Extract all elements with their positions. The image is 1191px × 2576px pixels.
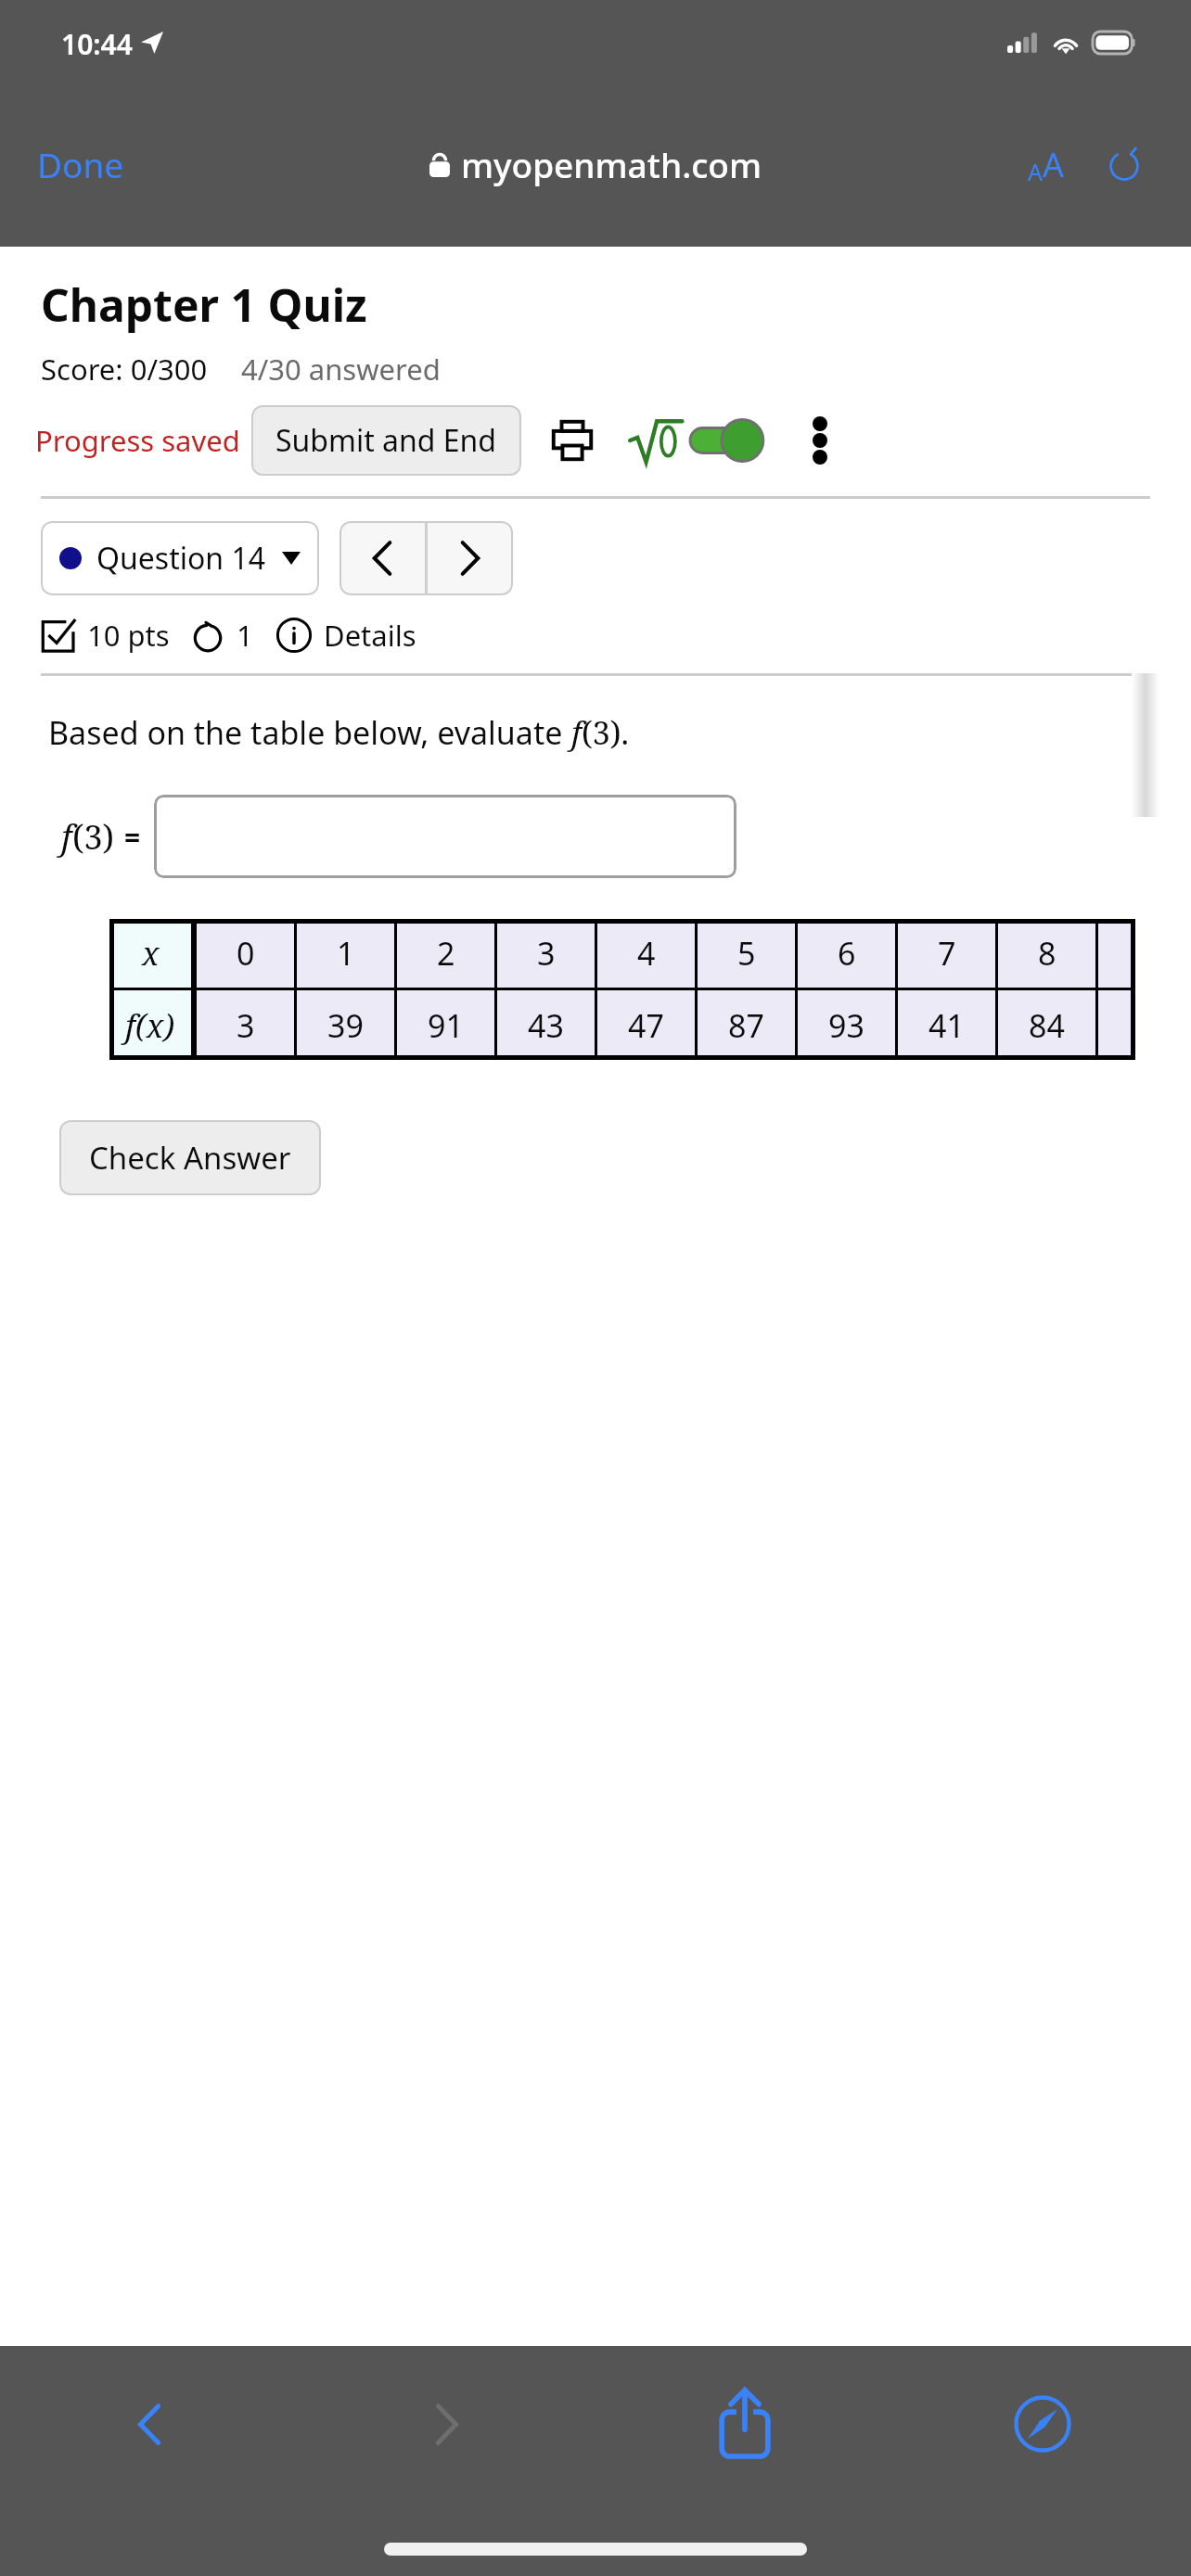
staticText: 7 [938,932,956,975]
staticText: 4/30 answered [241,350,441,389]
staticText: f [61,814,72,860]
staticText: (3) [72,814,115,860]
button[interactable]: Open in Safari [893,2378,1191,2470]
staticText: f [571,711,582,754]
staticText: Progress saved [35,421,240,460]
button[interactable]: Reload [1098,139,1150,191]
staticText: 1 [237,616,253,655]
staticText: 8 [1038,932,1057,975]
button[interactable]: Math editor toggle [690,418,764,463]
button[interactable]: Submit and End [251,405,521,476]
staticText: 0 [237,932,255,975]
staticText: 6 [838,932,856,975]
staticText: (x) [135,1004,175,1047]
staticText: Details [324,616,416,655]
button[interactable]: Text size [1018,133,1074,197]
staticText: 87 [728,1004,764,1047]
staticText: Score: 0/300 [41,350,208,389]
staticText: 3 [237,1004,255,1047]
staticText: 91 [428,1004,464,1047]
staticText: myopenmath.com [461,141,762,187]
button[interactable]: Back [0,2378,298,2470]
staticText: f [125,1004,135,1047]
staticText: = [124,818,141,856]
staticText: Question 14 [96,538,266,579]
staticText: 5 [737,932,756,975]
button[interactable]: Done [26,134,135,195]
button[interactable]: myopenmath.com [424,135,768,193]
staticText: (3). [582,711,630,754]
staticText: x [142,932,160,975]
staticText: Check Answer [89,1137,291,1179]
staticText: 3 [537,932,556,975]
staticText: 47 [628,1004,664,1047]
staticText: 1 [337,932,355,975]
staticText: 84 [1029,1004,1065,1047]
staticText: Chapter 1 Quiz [41,274,367,335]
button[interactable]: 10 pts [41,616,416,655]
staticText: 41 [928,1004,965,1047]
button[interactable]: Share [595,2378,893,2470]
staticText: 10 pts [87,616,170,655]
staticText: Submit and End [275,420,497,461]
staticText: A [1028,156,1043,187]
button[interactable]: Question 14 [41,521,319,595]
button[interactable]: Answer input [154,795,736,878]
staticText: 43 [528,1004,564,1047]
button[interactable]: Check Answer [59,1120,321,1195]
staticText: 93 [828,1004,864,1047]
button[interactable]: Next question [428,521,513,595]
staticText: 4 [637,932,656,975]
button[interactable]: More options [805,409,835,472]
staticText: A [1043,142,1065,187]
staticText: 10:44 [61,25,133,63]
staticText: 2 [437,932,455,975]
staticText: 39 [327,1004,364,1047]
button[interactable]: Previous question [339,521,425,595]
button[interactable]: Print [547,415,597,465]
staticText: Based on the table below, evaluate [48,711,571,754]
